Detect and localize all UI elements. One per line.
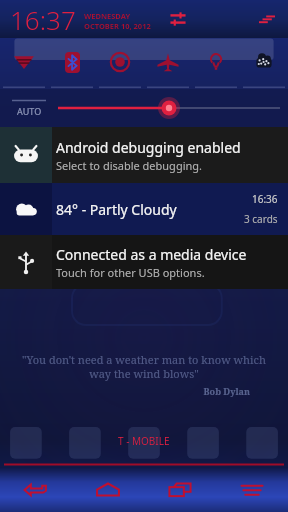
button[interactable]: Wi-Fi	[0, 38, 48, 86]
staticText: Bob Dylan	[18, 385, 250, 397]
staticText: Touch for other USB options.	[56, 265, 205, 280]
staticText: OCTOBER 10, 2012	[84, 21, 151, 31]
staticText: 16:37	[10, 2, 76, 37]
button[interactable]: Recent apps	[144, 467, 216, 512]
button[interactable]: Back	[0, 467, 72, 512]
staticText: AUTO	[17, 105, 42, 117]
button[interactable]: Close notification shade	[0, 462, 288, 467]
button[interactable]: Android debugging enabled	[0, 127, 288, 183]
button[interactable]: Connected as a media device	[0, 235, 288, 289]
staticText: "You don't need a weather man to know wh…	[18, 352, 270, 381]
staticText: Select to disable debugging.	[56, 158, 203, 173]
staticText: Connected as a media device	[56, 245, 247, 264]
staticText: Android debugging enabled	[56, 138, 241, 157]
button[interactable]: Settings	[240, 38, 288, 86]
button[interactable]: Brightness	[58, 89, 280, 127]
button[interactable]: Home	[72, 467, 144, 512]
button[interactable]: 84° - Partly Cloudy	[0, 183, 288, 235]
staticText: 3 cards	[244, 212, 278, 226]
button[interactable]: AUTO	[0, 89, 58, 127]
button[interactable]: Brightness	[192, 38, 240, 86]
staticText: 16:36	[252, 192, 278, 206]
button[interactable]: Signal strength	[254, 6, 280, 32]
staticText: WEDNESDAY	[84, 11, 131, 21]
button[interactable]: Airplane mode	[144, 38, 192, 86]
button[interactable]: Location	[96, 38, 144, 86]
button[interactable]: Quick settings	[165, 6, 191, 32]
button[interactable]: Bluetooth	[48, 38, 96, 86]
button[interactable]: Menu	[216, 467, 288, 512]
staticText: T - MOBILE	[118, 434, 170, 448]
staticText: 84° - Partly Cloudy	[56, 200, 177, 219]
